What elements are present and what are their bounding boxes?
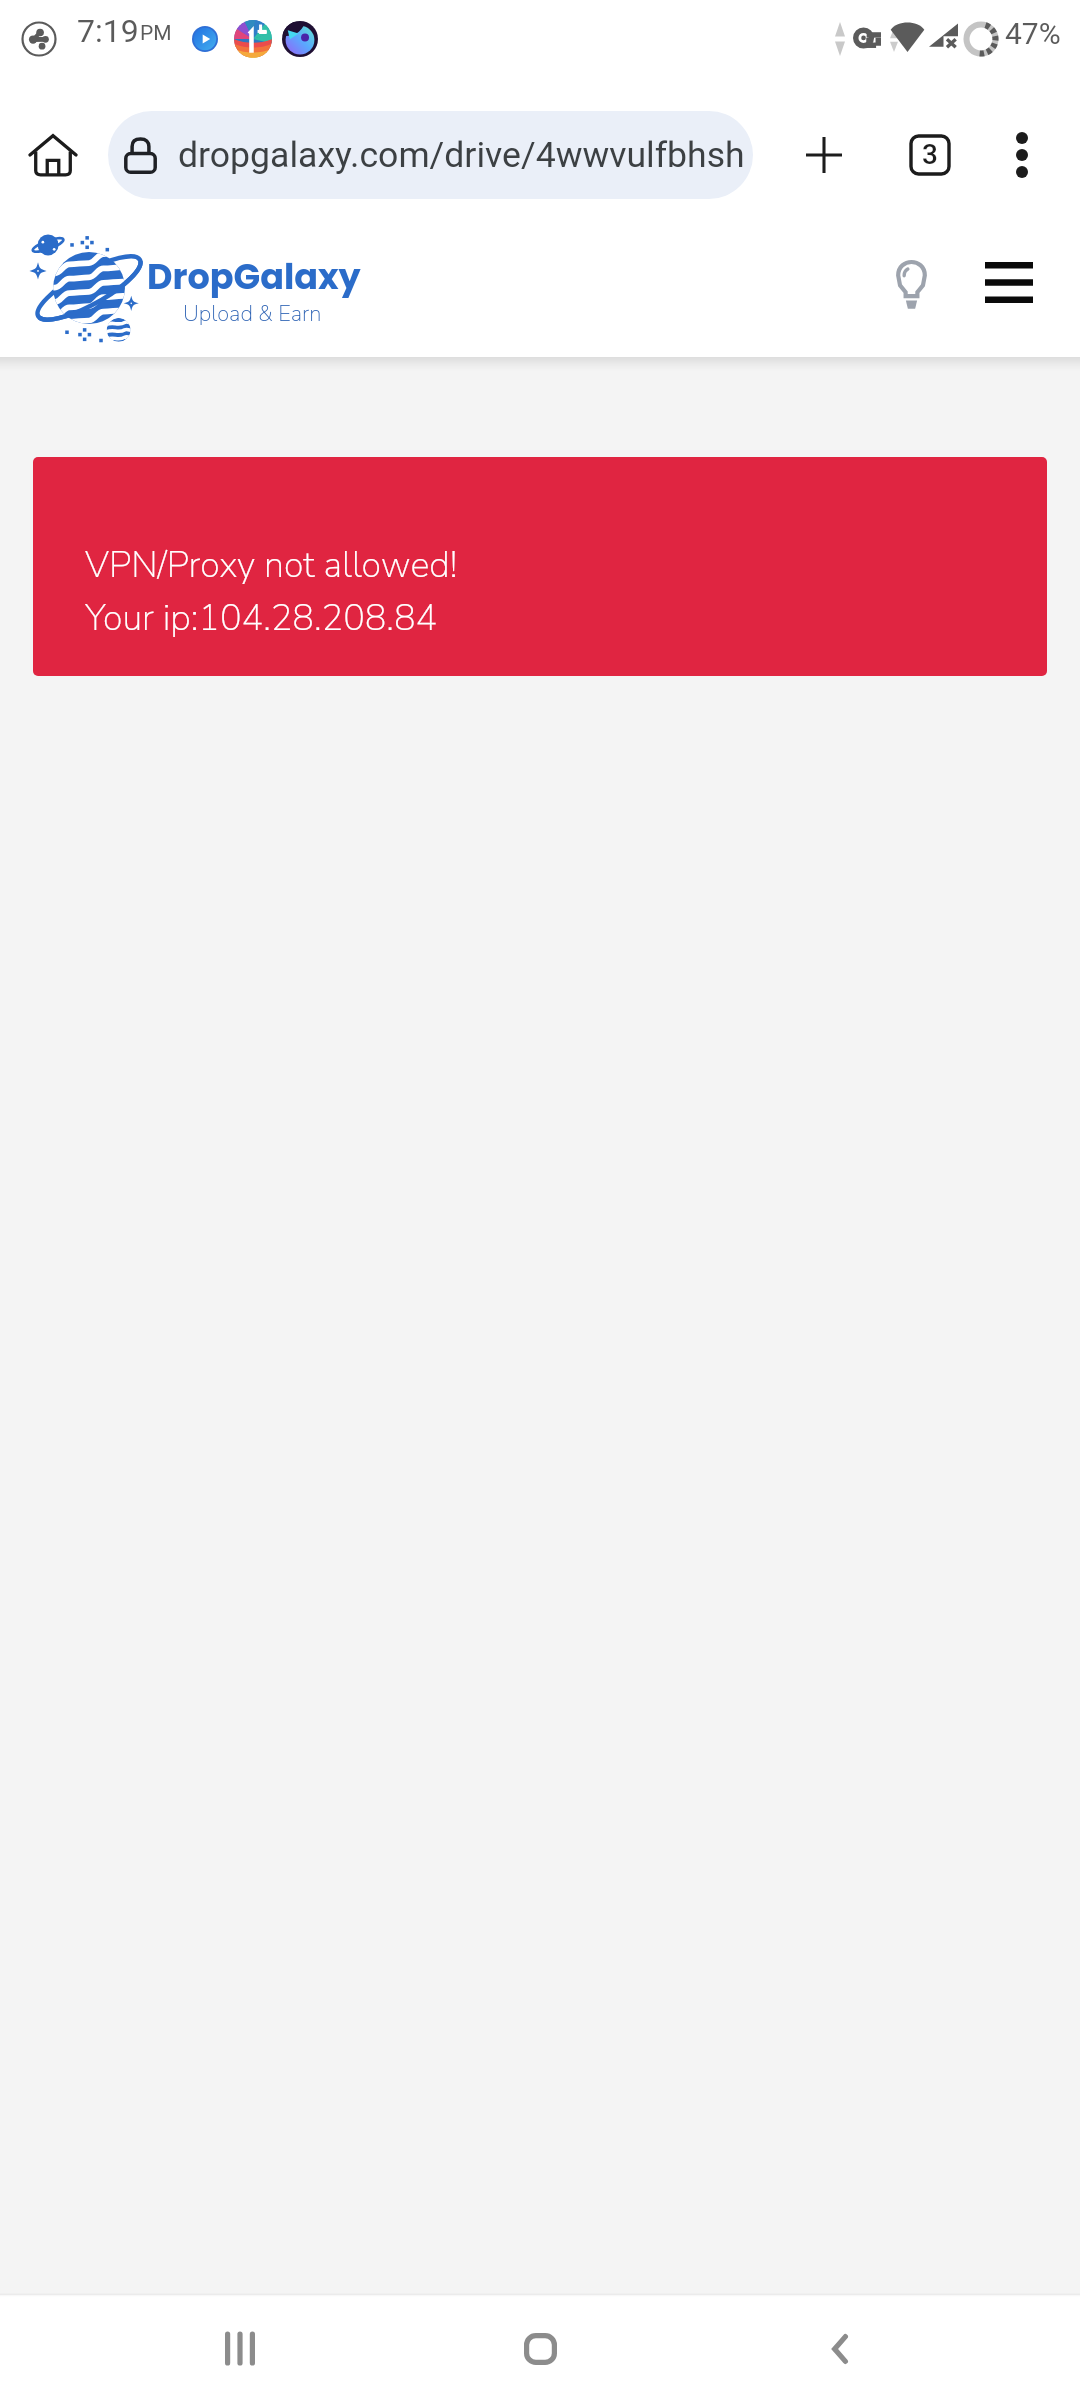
- button[interactable]: Home: [14, 107, 92, 203]
- staticText: Upload & Earn: [183, 299, 322, 329]
- staticText: 47%: [1005, 16, 1061, 51]
- staticText: PM: [140, 21, 172, 46]
- staticText: 7:19: [77, 12, 139, 50]
- button[interactable]: Toggle theme: [872, 235, 950, 329]
- button[interactable]: Home: [480, 2297, 600, 2400]
- button[interactable]: New tab: [786, 107, 862, 203]
- staticText: 3: [922, 138, 938, 171]
- button[interactable]: Menu: [968, 235, 1050, 329]
- button[interactable]: Back: [780, 2297, 900, 2400]
- staticText: dropgalaxy.com/drive/4wwvulfbhsh: [178, 134, 745, 176]
- staticText: DropGalaxy: [147, 252, 361, 301]
- button[interactable]: Tabs, 3 open: [892, 107, 968, 203]
- button[interactable]: dropgalaxy.com/drive/4wwvulfbhsh: [108, 111, 753, 199]
- button[interactable]: More options: [984, 107, 1060, 203]
- staticText: VPN/Proxy not allowed! Your ip:104.28.20…: [85, 541, 458, 643]
- button[interactable]: Recent apps: [180, 2297, 300, 2400]
